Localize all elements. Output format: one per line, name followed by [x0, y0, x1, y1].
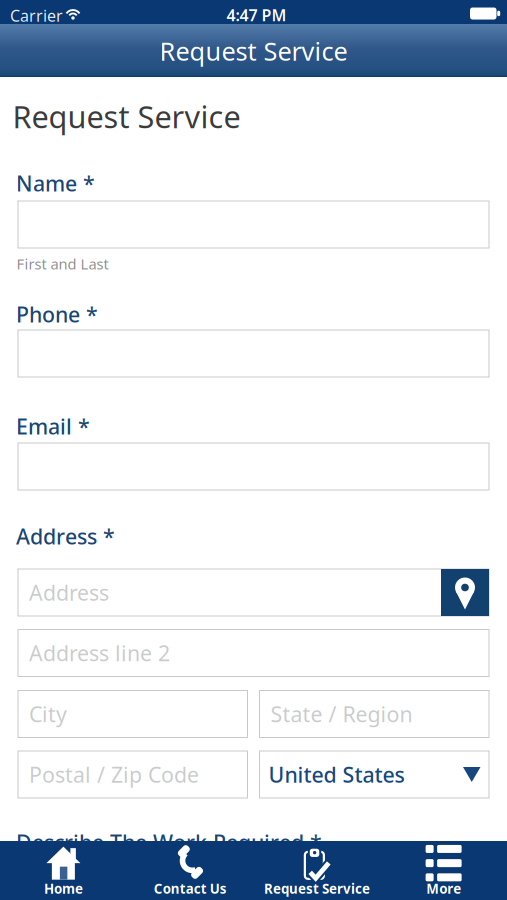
button[interactable]: Locate address on map: [441, 569, 489, 616]
textField[interactable]: City: [18, 699, 247, 729]
staticText: Request Service: [159, 34, 347, 68]
staticText: State / Region: [270, 700, 412, 728]
staticText: Home: [44, 880, 83, 897]
staticText: Address: [29, 578, 109, 607]
staticText: More: [426, 880, 461, 897]
staticText: City: [29, 700, 67, 728]
staticText: Postal / Zip Code: [29, 760, 199, 789]
staticText: Phone *: [16, 300, 98, 328]
staticText: Name *: [16, 169, 95, 197]
textField[interactable]: Address: [18, 577, 489, 607]
staticText: Request Service: [264, 880, 370, 897]
staticText: Email *: [16, 412, 90, 440]
staticText: Describe The Work Required *: [16, 828, 322, 856]
staticText: 4:47 PM: [226, 4, 286, 26]
button[interactable]: Contact Us: [127, 841, 254, 900]
button[interactable]: Request Service: [253, 841, 380, 900]
button[interactable]: Home: [0, 841, 127, 900]
textField[interactable]: State / Region: [259, 699, 489, 729]
staticText: Request Service: [12, 96, 240, 137]
staticText: Carrier: [10, 5, 63, 26]
textField[interactable]: Postal / Zip Code: [18, 759, 247, 789]
staticText: Contact Us: [154, 880, 227, 897]
staticText: Address *: [16, 522, 115, 550]
button[interactable]: More: [380, 841, 507, 900]
staticText: United States: [268, 760, 404, 789]
staticText: Address line 2: [29, 639, 170, 667]
staticText: First and Last: [16, 254, 108, 273]
textField[interactable]: Address line 2: [18, 638, 489, 668]
button[interactable]: United States: [259, 751, 489, 798]
